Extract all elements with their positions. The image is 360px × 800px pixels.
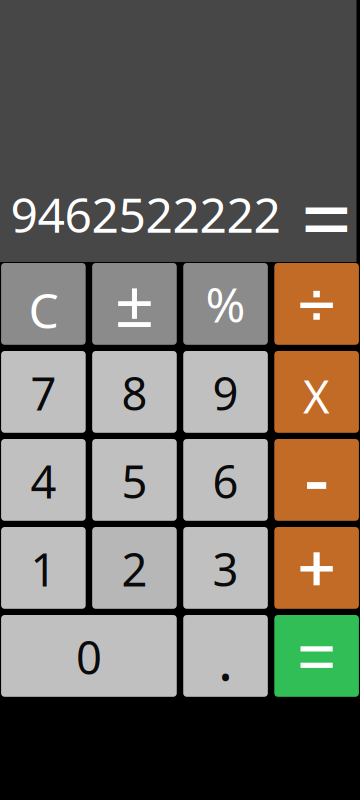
staticText: 7 bbox=[30, 363, 56, 423]
button[interactable]: 7 bbox=[1, 351, 86, 433]
staticText: 0 bbox=[76, 627, 102, 687]
button[interactable]: 1 bbox=[1, 527, 86, 609]
button[interactable]: Toggle sign bbox=[92, 263, 177, 345]
staticText: 5 bbox=[121, 451, 147, 511]
staticText: 8 bbox=[121, 363, 147, 423]
button[interactable]: Percent bbox=[183, 263, 268, 345]
staticText: % bbox=[205, 272, 245, 336]
staticText: . bbox=[218, 622, 233, 696]
staticText: = bbox=[300, 157, 352, 277]
button[interactable]: Divide bbox=[274, 263, 359, 345]
button[interactable]: Add bbox=[274, 527, 359, 609]
button[interactable]: Subtract bbox=[274, 439, 359, 521]
button[interactable]: 9 bbox=[183, 351, 268, 433]
button[interactable]: 0 bbox=[1, 615, 177, 697]
staticText: 4 bbox=[30, 451, 56, 511]
staticText: 2 bbox=[121, 539, 147, 599]
button[interactable]: 6 bbox=[183, 439, 268, 521]
button[interactable]: Multiply bbox=[274, 351, 359, 433]
button[interactable]: 3 bbox=[183, 527, 268, 609]
staticText: C bbox=[28, 278, 58, 342]
staticText: X bbox=[303, 366, 330, 426]
button[interactable]: Decimal point bbox=[183, 615, 268, 697]
button[interactable]: 5 bbox=[92, 439, 177, 521]
button[interactable]: 4 bbox=[1, 439, 86, 521]
staticText: 6 bbox=[212, 451, 238, 511]
staticText: 9462522222 bbox=[10, 182, 280, 246]
staticText: 9 bbox=[212, 363, 238, 423]
staticText: 3 bbox=[212, 539, 238, 599]
button[interactable]: Clear bbox=[1, 263, 86, 345]
button[interactable]: 2 bbox=[92, 527, 177, 609]
button[interactable]: Equals bbox=[274, 615, 359, 697]
button[interactable]: 8 bbox=[92, 351, 177, 433]
staticText: 1 bbox=[30, 539, 56, 599]
